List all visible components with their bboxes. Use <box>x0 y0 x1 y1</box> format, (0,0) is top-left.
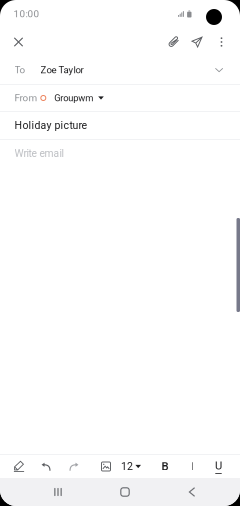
button[interactable]: Send <box>186 28 208 56</box>
button[interactable]: Undo <box>35 455 56 478</box>
staticText: Write email <box>15 147 64 159</box>
staticText: From <box>15 92 38 104</box>
button[interactable]: Attach <box>162 28 184 56</box>
staticText: U <box>215 459 222 472</box>
button[interactable]: Back <box>181 482 203 502</box>
button[interactable]: Underline <box>209 455 228 478</box>
button[interactable]: Italic <box>182 455 201 478</box>
staticText: I <box>190 460 193 473</box>
staticText: 12 <box>121 460 133 473</box>
staticText: Holiday picture <box>15 119 88 132</box>
button[interactable]: Bold <box>155 455 174 478</box>
button[interactable]: Close <box>7 28 29 56</box>
button[interactable]: Format text <box>8 455 29 478</box>
button[interactable]: Font size <box>118 455 144 478</box>
staticText: Groupwm <box>54 92 93 103</box>
button[interactable]: Insert image <box>95 455 116 478</box>
staticText: B <box>161 460 168 473</box>
button[interactable]: Home <box>114 482 136 502</box>
button[interactable]: From <box>0 85 240 111</box>
staticText: Zoe Taylor <box>41 64 84 76</box>
button[interactable]: Recents <box>47 482 69 502</box>
button[interactable]: More options <box>211 28 231 56</box>
button[interactable]: Redo <box>63 455 84 478</box>
button[interactable]: To <box>0 56 240 84</box>
staticText: 10:00 <box>14 8 40 20</box>
staticText: To <box>15 64 26 76</box>
